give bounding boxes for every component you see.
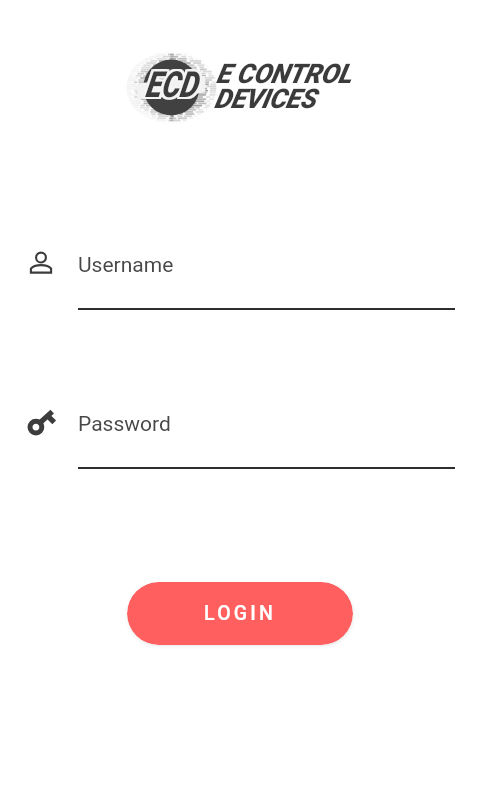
staticText: ECD <box>147 66 200 108</box>
button[interactable]: Username <box>22 242 458 314</box>
button[interactable]: Password <box>22 401 458 473</box>
staticText: ECD <box>147 64 200 106</box>
staticText: ECD <box>147 62 200 104</box>
staticText: ECD <box>143 62 196 104</box>
staticText: ECD <box>145 64 198 106</box>
staticText: ECD <box>143 66 196 108</box>
staticText: Username <box>78 253 174 278</box>
staticText: LOGIN <box>204 602 277 625</box>
staticText: ECD <box>145 62 198 104</box>
other: Username <box>30 250 52 274</box>
other: Password <box>27 409 55 437</box>
staticText: Password <box>78 412 171 437</box>
staticText: DEVICES <box>214 83 316 115</box>
staticText: ECD <box>145 66 198 108</box>
button[interactable]: LOGIN <box>127 582 353 645</box>
staticText: E CONTROL <box>216 58 352 90</box>
staticText: ECD <box>143 64 196 106</box>
